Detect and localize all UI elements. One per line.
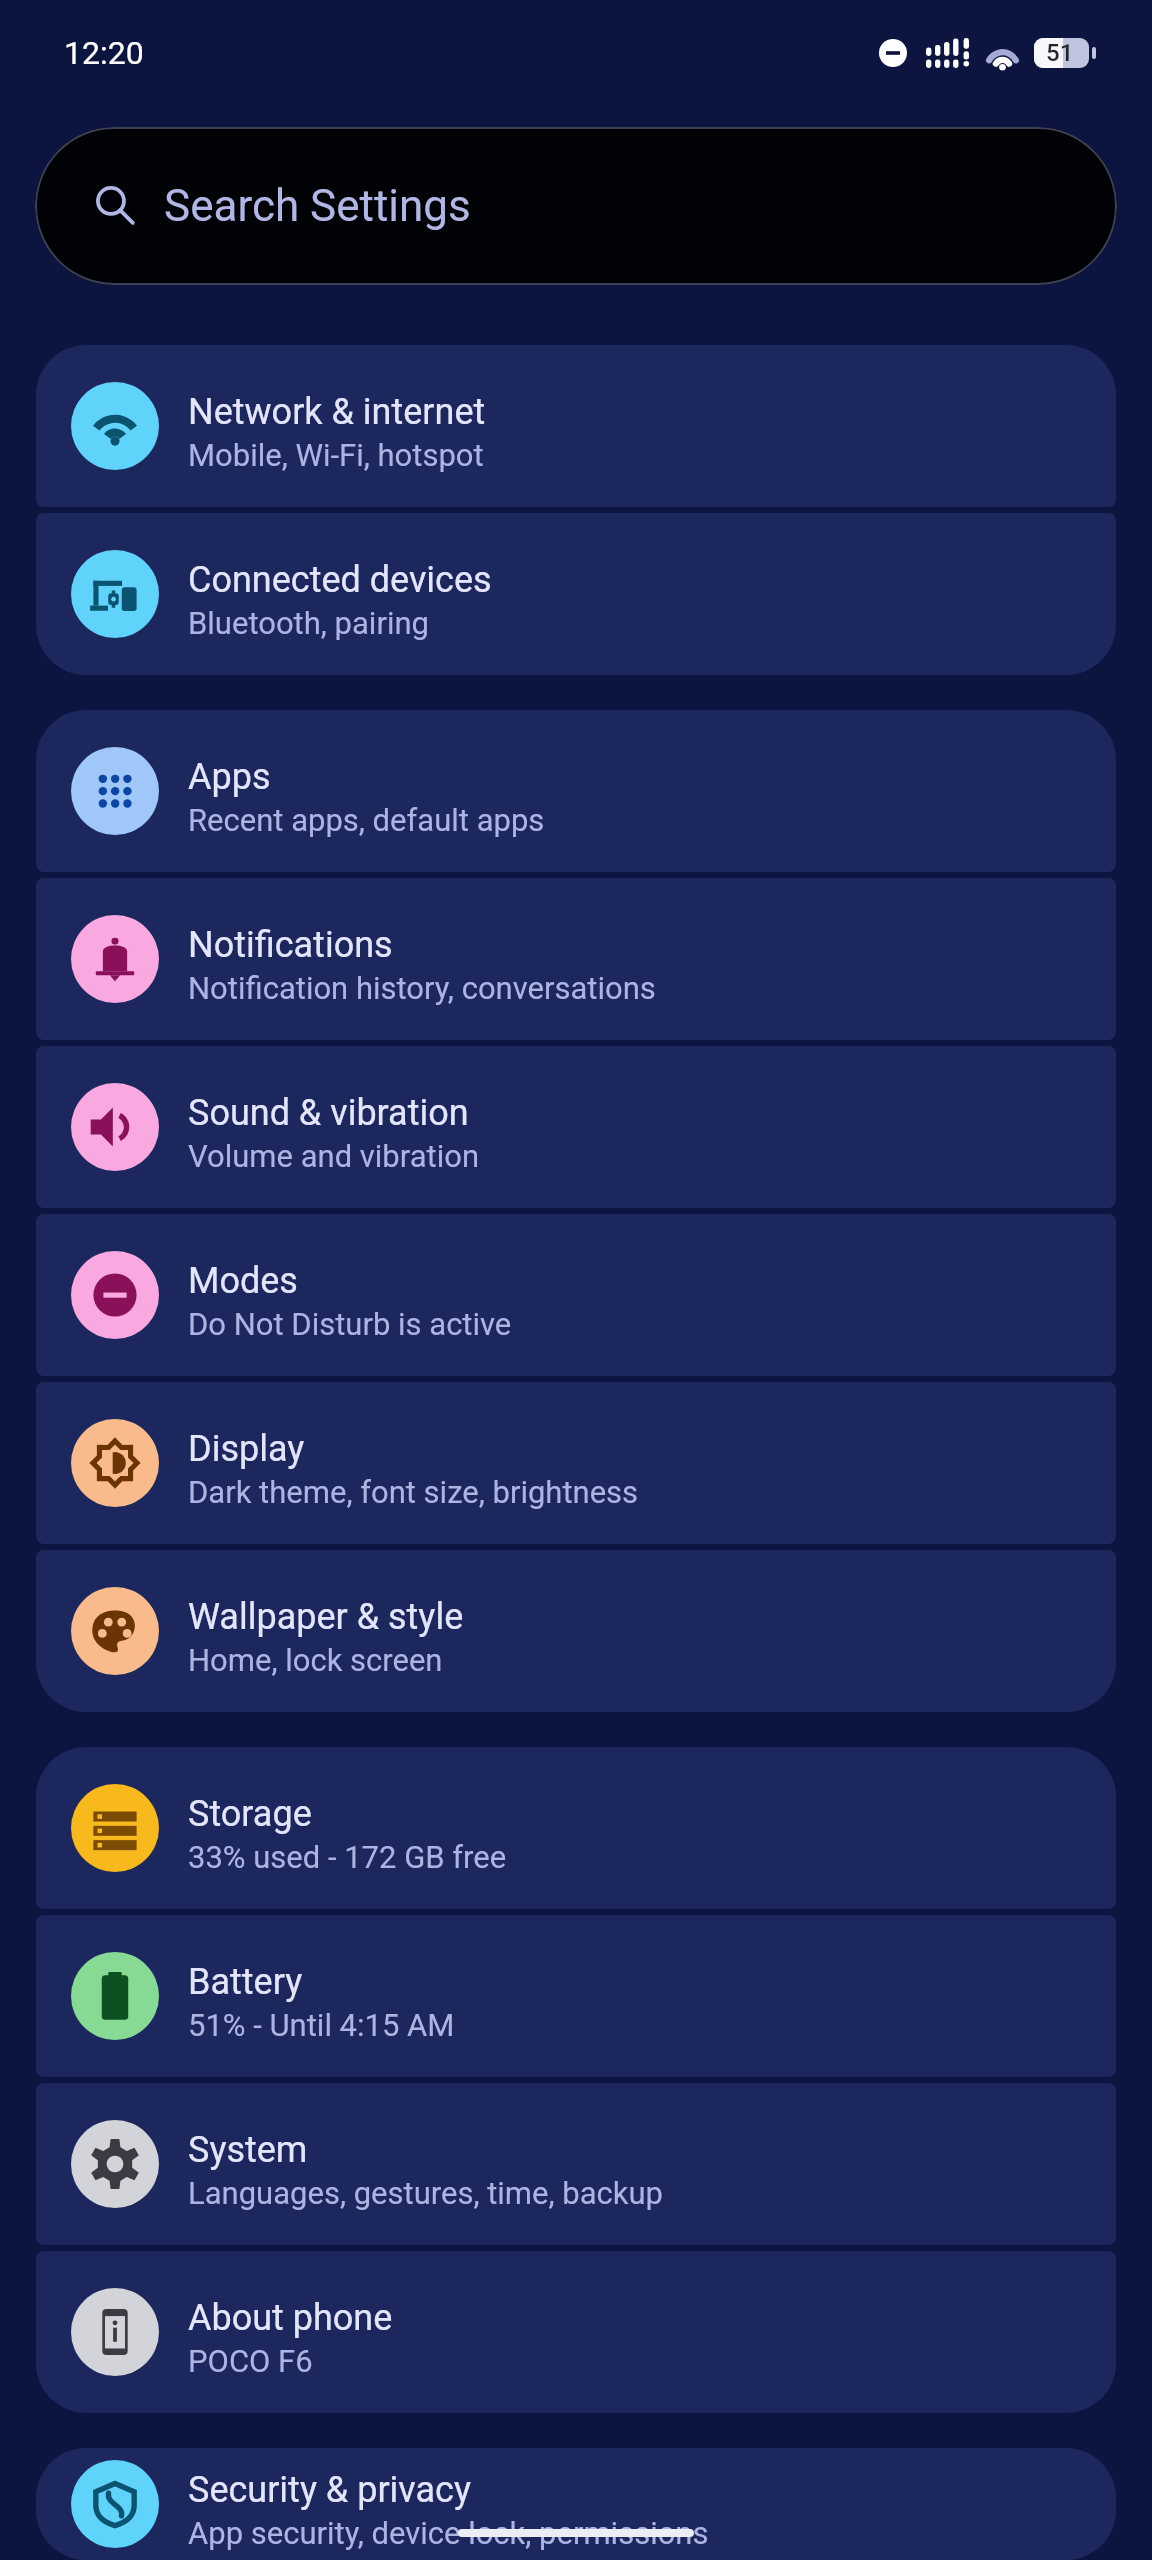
staticText: Do Not Disturb is active: [188, 1306, 512, 1342]
staticText: Display: [188, 1428, 305, 1470]
staticText: Notifications: [188, 924, 393, 966]
staticText: Modes: [188, 1260, 298, 1302]
button[interactable]: Display: [36, 1382, 1116, 1544]
staticText: Apps: [188, 756, 271, 798]
staticText: Home, lock screen: [188, 1642, 443, 1678]
staticText: 51: [1046, 39, 1074, 67]
button[interactable]: Security & privacy: [36, 2448, 1116, 2560]
button[interactable]: Storage: [36, 1747, 1116, 1909]
staticText: Bluetooth, pairing: [188, 605, 429, 641]
staticText: Storage: [188, 1793, 312, 1835]
staticText: POCO F6: [188, 2343, 313, 2379]
button[interactable]: Wallpaper & style: [36, 1550, 1116, 1712]
other: Search: [95, 185, 137, 227]
staticText: 12:20: [64, 34, 144, 72]
staticText: Connected devices: [188, 559, 492, 601]
staticText: Search Settings: [164, 180, 471, 232]
staticText: Languages, gestures, time, backup: [188, 2175, 663, 2211]
staticText: App security, device lock, permissions: [188, 2515, 709, 2551]
staticText: Notification history, conversations: [188, 970, 656, 1006]
button[interactable]: Connected devices: [36, 513, 1116, 675]
staticText: Sound & vibration: [188, 1092, 469, 1134]
staticText: Volume and vibration: [188, 1138, 480, 1174]
button[interactable]: System: [36, 2083, 1116, 2245]
staticText: System: [188, 2129, 308, 2171]
button[interactable]: Search: [35, 127, 1117, 285]
staticText: Battery: [188, 1961, 303, 2003]
staticText: Recent apps, default apps: [188, 802, 545, 838]
staticText: 51% - Until 4:15 AM: [188, 2007, 455, 2043]
button[interactable]: Network & internet: [36, 345, 1116, 507]
staticText: Wallpaper & style: [188, 1596, 464, 1638]
staticText: Dark theme, font size, brightness: [188, 1474, 639, 1510]
button[interactable]: Battery: [36, 1915, 1116, 2077]
button[interactable]: Notifications: [36, 878, 1116, 1040]
button[interactable]: Apps: [36, 710, 1116, 872]
button[interactable]: Modes: [36, 1214, 1116, 1376]
staticText: Security & privacy: [188, 2469, 471, 2511]
staticText: Mobile, Wi-Fi, hotspot: [188, 437, 484, 473]
button[interactable]: Sound & vibration: [36, 1046, 1116, 1208]
other: Do not disturb: [879, 39, 907, 67]
button[interactable]: About phone: [36, 2251, 1116, 2413]
staticText: Network & internet: [188, 391, 486, 433]
staticText: About phone: [188, 2297, 393, 2339]
staticText: 33% used - 172 GB free: [188, 1839, 507, 1875]
